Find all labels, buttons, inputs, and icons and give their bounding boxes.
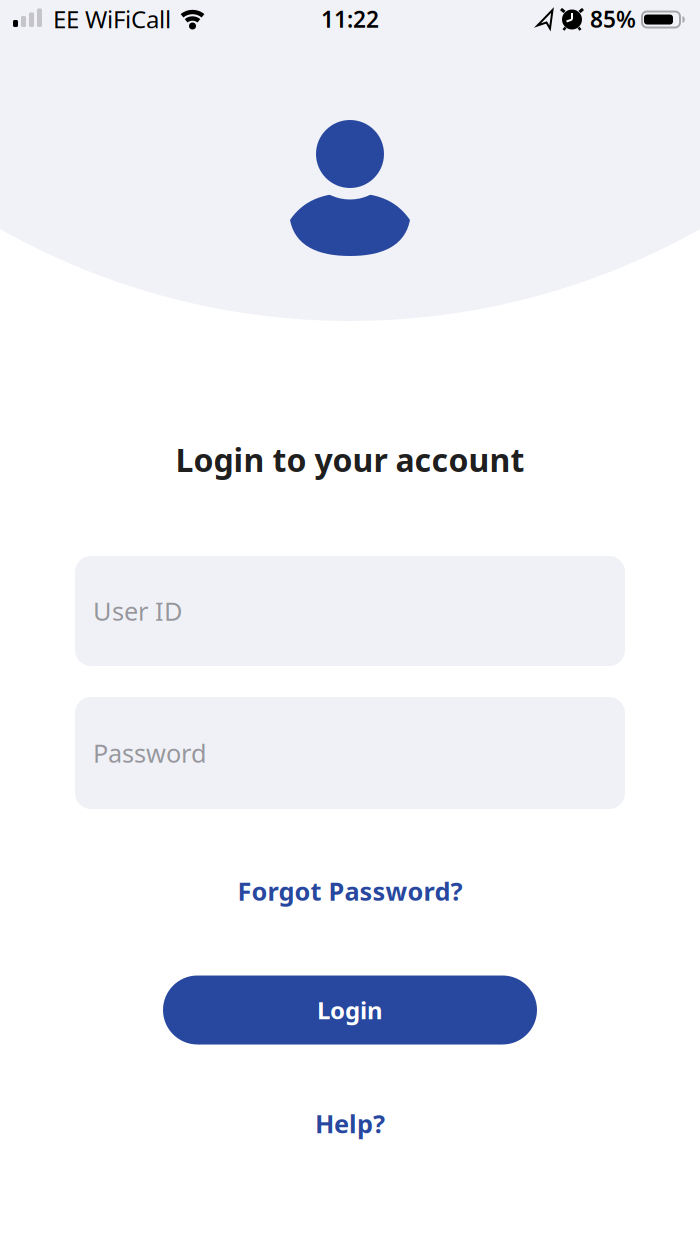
staticText: Login to your account [175, 438, 524, 481]
button[interactable]: Password [75, 697, 625, 809]
staticText: 11:22 [321, 4, 379, 34]
staticText: Help? [315, 1107, 385, 1140]
button[interactable]: Forgot Password? [237, 874, 462, 908]
staticText: User ID [93, 594, 182, 628]
staticText: Login [317, 994, 383, 1026]
button[interactable]: Help? [315, 1107, 385, 1140]
button[interactable]: Login [163, 975, 537, 1044]
staticText: Password [93, 736, 207, 770]
staticText: 85% [590, 4, 636, 34]
staticText: EE WiFiCall [53, 3, 171, 35]
button[interactable]: User ID [75, 556, 625, 666]
staticText: Forgot Password? [237, 874, 462, 908]
